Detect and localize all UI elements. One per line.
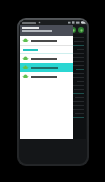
button[interactable] [20, 63, 73, 72]
button[interactable] [20, 72, 73, 81]
button[interactable] [20, 36, 73, 45]
button[interactable] [20, 54, 73, 63]
button[interactable]: Debug [78, 27, 84, 33]
button[interactable]: Run [70, 27, 76, 33]
